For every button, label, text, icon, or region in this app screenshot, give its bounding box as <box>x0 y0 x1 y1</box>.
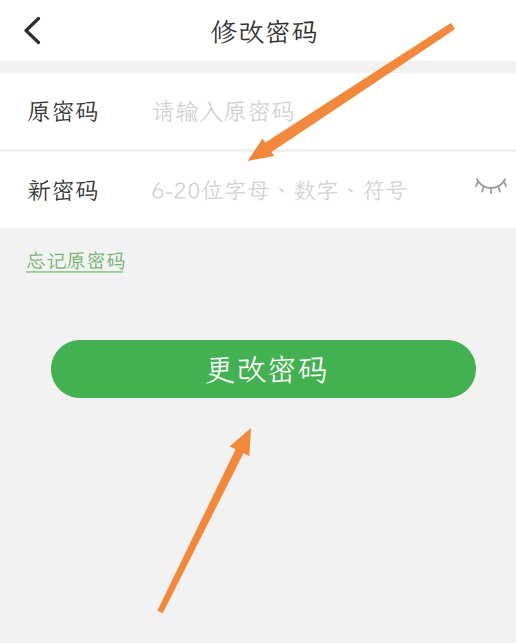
staticText: 新密码 <box>27 174 99 206</box>
button[interactable]: Back <box>0 0 58 61</box>
staticText: 修改密码 <box>210 14 318 49</box>
staticText: 6-20位字母、数字、符号 <box>151 175 408 205</box>
staticText: 忘记原密码 <box>26 247 126 273</box>
staticText: 原密码 <box>27 95 99 127</box>
button[interactable]: Show password <box>475 152 516 228</box>
button[interactable]: 忘记原密码 <box>26 247 126 279</box>
button[interactable]: 更改密码 <box>51 340 476 398</box>
staticText: 请输入原密码 <box>151 95 295 127</box>
staticText: 更改密码 <box>204 349 328 389</box>
